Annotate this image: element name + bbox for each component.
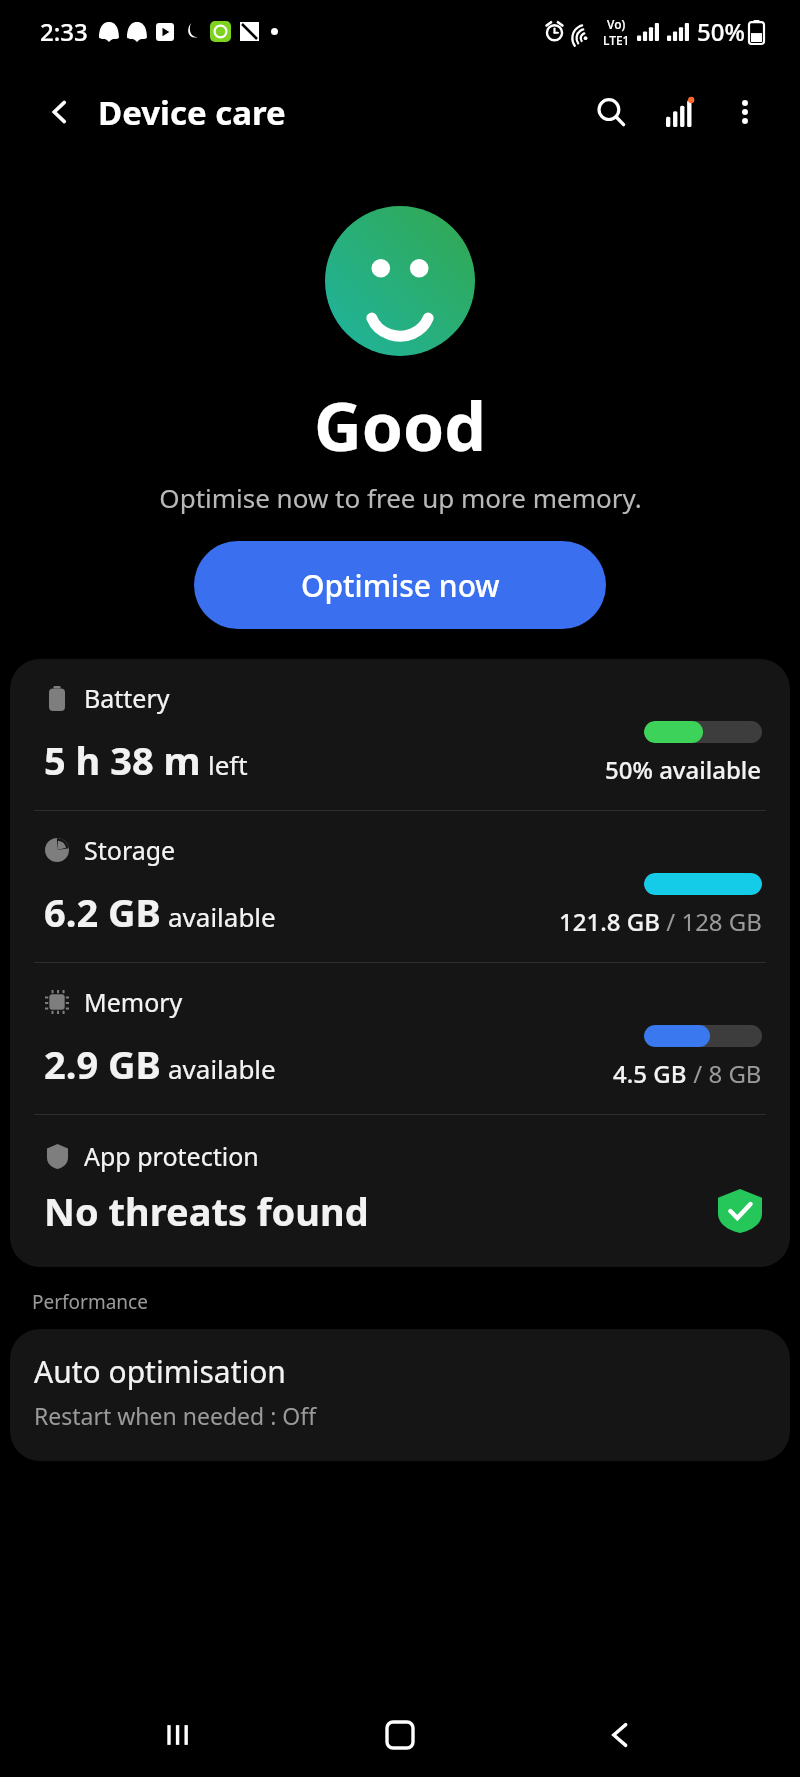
staticText: Good — [314, 380, 486, 470]
staticText: 2:33 — [40, 15, 88, 48]
button[interactable]: Usage statistics — [652, 83, 710, 141]
staticText: Vo) — [607, 16, 626, 32]
staticText: / 128 GB — [660, 905, 762, 938]
staticText: available — [168, 1051, 276, 1086]
staticText: 6.2 GB — [44, 886, 161, 938]
button[interactable]: Storage — [10, 811, 790, 962]
staticText: left — [208, 747, 248, 782]
staticText: LTE1 — [603, 32, 630, 48]
staticText: Restart when needed : Off — [34, 1400, 317, 1431]
staticText: Performance — [32, 1289, 148, 1315]
staticText: App protection — [84, 1139, 259, 1173]
button[interactable]: More options — [716, 83, 774, 141]
button[interactable]: Back — [580, 1695, 660, 1775]
staticText: Memory — [84, 985, 183, 1019]
staticText: 50% — [697, 15, 745, 48]
button[interactable]: Recent apps — [140, 1695, 220, 1775]
staticText: 4.5 GB — [613, 1057, 687, 1090]
button[interactable]: Back — [36, 88, 84, 136]
staticText: No threats found — [44, 1185, 369, 1237]
button[interactable]: Memory — [10, 963, 790, 1114]
staticText: 2.9 GB — [44, 1038, 161, 1090]
staticText: 121.8 GB — [559, 905, 660, 938]
staticText: Optimise now — [301, 565, 500, 606]
staticText: Battery — [84, 681, 170, 715]
staticText: 5 h 38 m — [44, 734, 201, 786]
staticText: available — [168, 899, 276, 934]
staticText: Device care — [98, 90, 286, 135]
button[interactable]: App protection — [10, 1115, 790, 1267]
staticText: 50% available — [605, 753, 762, 786]
button[interactable]: Home — [360, 1695, 440, 1775]
button[interactable]: Auto optimisation — [10, 1329, 790, 1461]
staticText: Storage — [84, 833, 176, 867]
staticText: Optimise now to free up more memory. — [159, 480, 642, 515]
staticText: Auto optimisation — [34, 1351, 286, 1392]
button[interactable]: Search — [582, 83, 640, 141]
staticText: / 8 GB — [687, 1057, 762, 1090]
button[interactable]: Optimise now — [194, 541, 606, 629]
button[interactable]: Battery — [10, 659, 790, 810]
